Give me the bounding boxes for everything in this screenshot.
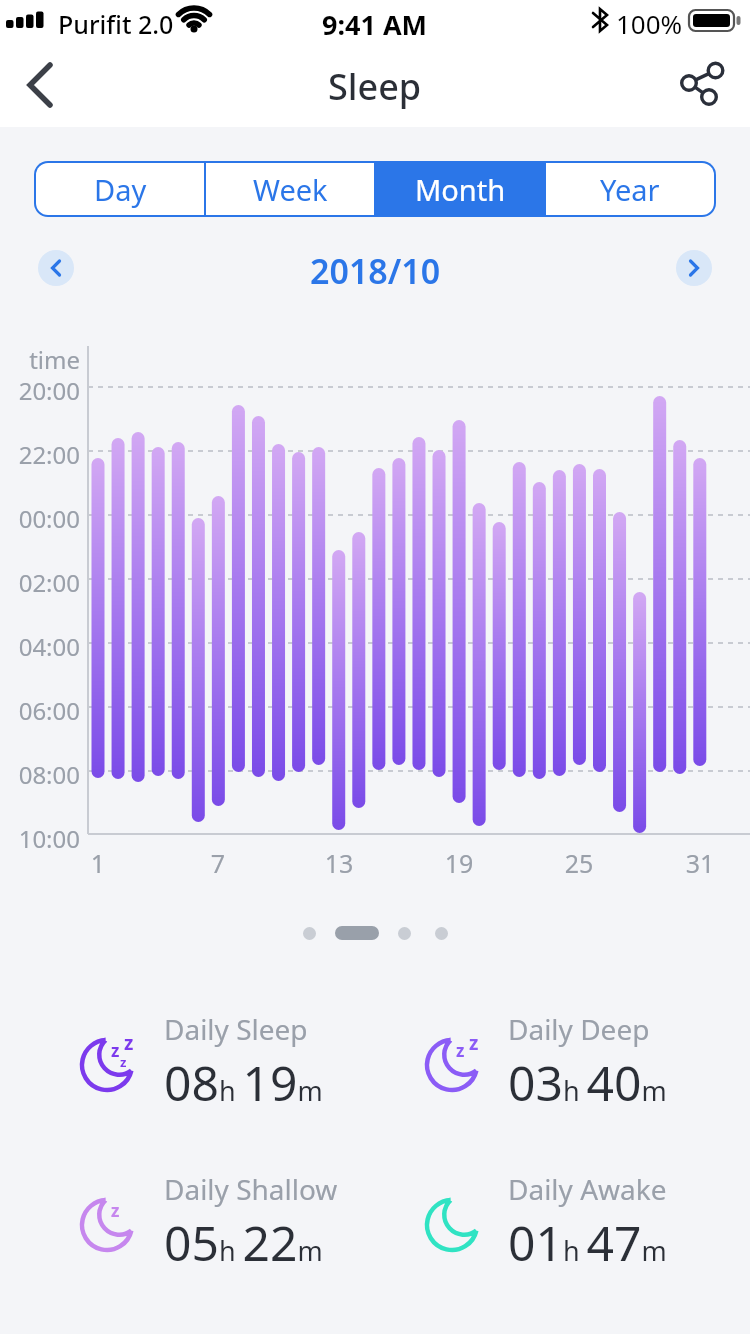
staticText: 06:00 xyxy=(0,694,80,727)
staticText: z xyxy=(111,1199,120,1222)
button[interactable]: Day xyxy=(36,163,204,215)
button[interactable]: Year xyxy=(546,163,714,215)
staticText: Daily Awake xyxy=(508,1170,667,1208)
staticText: Daily Sleep xyxy=(164,1010,308,1048)
staticText: time xyxy=(0,343,80,376)
button[interactable]: Month xyxy=(376,163,544,215)
staticText: 10:00 xyxy=(0,822,80,855)
staticText: 20:00 xyxy=(0,374,80,407)
staticText: 02:00 xyxy=(0,566,80,599)
staticText: 08:00 xyxy=(0,758,80,791)
button[interactable] xyxy=(38,250,74,286)
staticText: Daily Deep xyxy=(508,1010,650,1048)
staticText: 04:00 xyxy=(0,630,80,663)
staticText: 25 xyxy=(549,846,609,880)
staticText: 19 xyxy=(429,846,489,880)
staticText: Sleep xyxy=(328,62,422,111)
staticText: 22:00 xyxy=(0,438,80,471)
button[interactable] xyxy=(16,64,60,108)
staticText: z xyxy=(456,1039,465,1062)
staticText: Year xyxy=(600,170,660,209)
staticText: 05h 22m xyxy=(164,1210,323,1275)
staticText: 00:00 xyxy=(0,502,80,535)
staticText: 01h 47m xyxy=(508,1210,667,1275)
button[interactable]: Week xyxy=(206,163,374,215)
staticText: 100% xyxy=(616,6,683,41)
staticText: 1 xyxy=(68,846,128,880)
staticText: 08h 19m xyxy=(164,1050,323,1115)
staticText: Day xyxy=(94,170,147,209)
staticText: z xyxy=(124,1030,134,1056)
staticText: Daily Shallow xyxy=(164,1170,338,1208)
staticText: Purifit 2.0 xyxy=(58,7,174,41)
staticText: 9:41 AM xyxy=(322,6,428,43)
button[interactable] xyxy=(676,250,712,286)
staticText: 31 xyxy=(670,846,730,880)
staticText: Month xyxy=(415,170,506,209)
staticText: 03h 40m xyxy=(508,1050,667,1115)
staticText: Week xyxy=(253,170,328,209)
staticText: z xyxy=(120,1053,127,1071)
button[interactable] xyxy=(672,58,728,114)
staticText: z xyxy=(469,1030,479,1056)
staticText: 2018/10 xyxy=(310,248,441,288)
staticText: z xyxy=(111,1039,120,1062)
staticText: 13 xyxy=(309,846,369,880)
staticText: 7 xyxy=(188,846,248,880)
